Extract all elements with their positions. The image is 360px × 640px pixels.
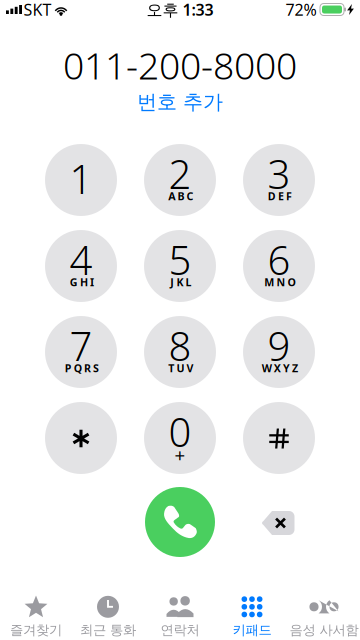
staticText: 011-200-8000 (63, 40, 297, 90)
staticText: 72% (285, 0, 316, 20)
staticText: SKT (23, 0, 51, 20)
button[interactable]: 최근 통화 (72, 592, 144, 640)
staticText: MNO (264, 275, 295, 289)
staticText: 음성 사서함 (289, 622, 358, 638)
staticText: + (174, 443, 185, 467)
staticText: JKL (170, 275, 191, 289)
staticText: 3 (267, 147, 290, 200)
button[interactable]: 1 (45, 144, 117, 216)
button[interactable]: 4 (45, 230, 117, 302)
button[interactable]: 5 (144, 230, 216, 302)
button[interactable]: 연락처 (144, 592, 216, 640)
button[interactable]: 번호 추가 (123, 86, 237, 118)
staticText: 최근 통화 (80, 622, 136, 638)
staticText: 즐겨찾기 (10, 622, 62, 638)
staticText: 8 (168, 319, 191, 372)
button[interactable]: Call (145, 487, 215, 557)
staticText: WXYZ (262, 361, 298, 375)
staticText: 0 (168, 405, 191, 458)
staticText: 9 (267, 319, 290, 372)
button[interactable]: 8 (144, 316, 216, 388)
staticText: PQRS (65, 361, 99, 375)
button[interactable]: 3 (243, 144, 315, 216)
staticText: GHI (70, 275, 94, 289)
button[interactable]: Delete (244, 497, 312, 549)
button[interactable]: 6 (243, 230, 315, 302)
staticText: 4 (69, 233, 92, 286)
staticText: 번호 추가 (137, 90, 223, 114)
staticText: 2 (168, 147, 191, 200)
staticText: 1 (69, 152, 92, 205)
staticText: 7 (69, 319, 92, 372)
button[interactable]: 0 (144, 402, 216, 474)
staticText: DEF (268, 189, 292, 203)
staticText: 6 (267, 233, 290, 286)
staticText: 키패드 (232, 622, 271, 638)
button[interactable]: 음성 사서함 (288, 592, 360, 640)
button[interactable]: 2 (144, 144, 216, 216)
button[interactable]: 7 (45, 316, 117, 388)
staticText: 오후 1:33 (146, 0, 213, 20)
staticText: 5 (168, 233, 191, 286)
button[interactable]: 9 (243, 316, 315, 388)
button[interactable] (243, 402, 315, 474)
staticText: TUV (168, 361, 193, 375)
staticText: ABC (168, 189, 193, 203)
button[interactable] (45, 402, 117, 474)
staticText: 연락처 (160, 622, 199, 638)
button[interactable]: 키패드 (216, 592, 288, 640)
button[interactable]: 즐겨찾기 (0, 592, 72, 640)
